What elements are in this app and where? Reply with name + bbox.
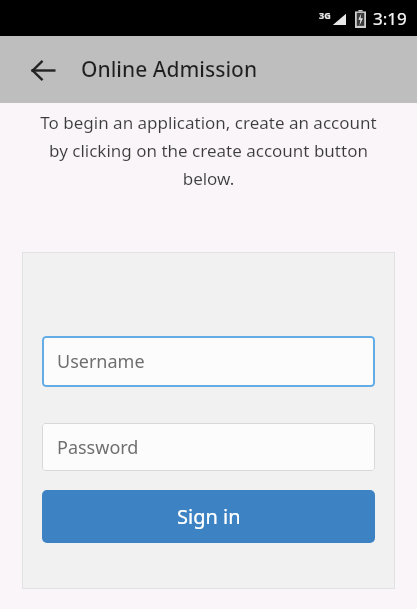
staticText: Password <box>57 435 139 460</box>
staticText: Sign in <box>177 503 241 530</box>
button[interactable]: Sign in <box>42 490 375 543</box>
staticText: 3:19 <box>373 7 407 30</box>
staticText: Online Admission <box>81 55 258 84</box>
staticText: Username <box>57 349 145 374</box>
button[interactable]: Back <box>22 49 64 91</box>
button[interactable]: Username <box>42 336 375 387</box>
button[interactable]: Password <box>42 423 375 471</box>
staticText: 3G <box>319 9 331 21</box>
staticText: To begin an application, create an accou… <box>30 111 387 190</box>
